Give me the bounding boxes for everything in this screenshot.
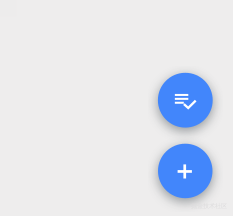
- staticText: 掘金技术社区: [191, 202, 227, 210]
- button[interactable]: Tasks: [158, 73, 213, 128]
- button[interactable]: Add: [158, 144, 212, 198]
